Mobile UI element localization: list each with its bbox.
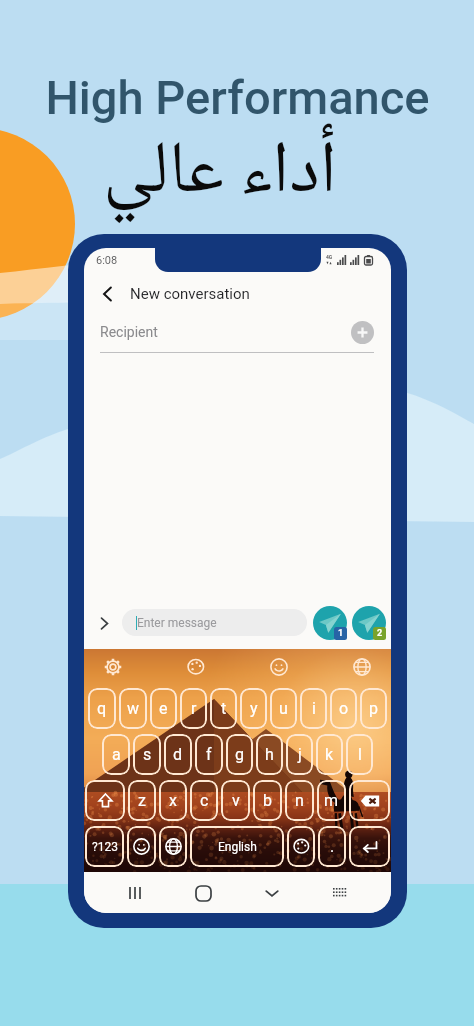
- staticText: 4G: [326, 254, 333, 260]
- staticText: أداء عالي: [103, 113, 337, 237]
- staticText: v: [232, 791, 240, 810]
- button[interactable]: Back: [92, 278, 124, 310]
- button[interactable]: j: [286, 734, 313, 775]
- button[interactable]: q: [88, 688, 116, 729]
- staticText: New conversation: [130, 285, 250, 303]
- button[interactable]: Recipient: [100, 316, 374, 348]
- button[interactable]: p: [360, 688, 387, 729]
- button[interactable]: i: [300, 688, 327, 729]
- staticText: High Performance: [45, 70, 430, 125]
- button[interactable]: Backspace: [349, 780, 390, 821]
- button[interactable]: d: [164, 734, 192, 775]
- staticText: q: [97, 699, 107, 718]
- staticText: k: [325, 745, 334, 764]
- button[interactable]: t: [210, 688, 237, 729]
- staticText: n: [295, 791, 304, 810]
- staticText: x: [169, 791, 177, 810]
- staticText: b: [263, 791, 272, 810]
- button[interactable]: o: [330, 688, 357, 729]
- staticText: Enter message: [137, 616, 217, 630]
- staticText: h: [265, 745, 274, 764]
- button[interactable]: y: [240, 688, 267, 729]
- staticText: p: [369, 699, 378, 718]
- button[interactable]: Add recipient: [351, 321, 374, 344]
- button[interactable]: Home: [186, 876, 220, 910]
- staticText: j: [298, 745, 302, 764]
- button[interactable]: s: [133, 734, 161, 775]
- button[interactable]: g: [226, 734, 253, 775]
- button[interactable]: u: [270, 688, 297, 729]
- button[interactable]: English: [190, 826, 284, 867]
- staticText: d: [173, 745, 183, 764]
- staticText: w: [127, 699, 140, 718]
- button[interactable]: Send 1: [313, 606, 347, 640]
- button[interactable]: c: [190, 780, 218, 821]
- button[interactable]: x: [159, 780, 187, 821]
- staticText: m: [324, 791, 339, 810]
- staticText: e: [159, 699, 168, 718]
- staticText: t: [221, 699, 227, 718]
- staticText: English: [218, 840, 257, 854]
- staticText: c: [200, 791, 209, 810]
- button[interactable]: n: [285, 780, 314, 821]
- staticText: a: [112, 745, 121, 764]
- staticText: g: [235, 745, 244, 764]
- button[interactable]: Shift: [85, 780, 125, 821]
- staticText: f: [206, 745, 212, 764]
- button[interactable]: Enter message: [122, 609, 307, 636]
- staticText: ?123: [92, 840, 118, 854]
- button[interactable]: Language: [159, 826, 187, 867]
- button[interactable]: Emoji: [127, 826, 156, 867]
- button[interactable]: Settings: [98, 652, 128, 682]
- staticText: Recipient: [100, 324, 158, 340]
- button[interactable]: z: [128, 780, 156, 821]
- button[interactable]: l: [346, 734, 373, 775]
- button[interactable]: Enter: [349, 826, 390, 867]
- button[interactable]: e: [150, 688, 177, 729]
- staticText: .: [330, 837, 335, 856]
- staticText: 1: [338, 628, 344, 639]
- button[interactable]: .: [318, 826, 346, 867]
- button[interactable]: a: [102, 734, 130, 775]
- button[interactable]: Language: [347, 652, 377, 682]
- button[interactable]: r: [180, 688, 207, 729]
- staticText: y: [250, 699, 258, 718]
- button[interactable]: b: [253, 780, 282, 821]
- staticText: z: [138, 791, 146, 810]
- staticText: u: [279, 699, 288, 718]
- staticText: 6:08: [96, 254, 118, 267]
- staticText: 2: [377, 628, 383, 639]
- button[interactable]: Send 2: [352, 606, 386, 640]
- button[interactable]: h: [256, 734, 283, 775]
- button[interactable]: Recents: [118, 876, 152, 910]
- button[interactable]: Hide keyboard: [255, 876, 289, 910]
- button[interactable]: Expand: [92, 611, 116, 635]
- button[interactable]: f: [195, 734, 223, 775]
- staticText: r: [191, 699, 197, 718]
- button[interactable]: k: [316, 734, 343, 775]
- staticText: o: [339, 699, 349, 718]
- button[interactable]: ?123: [85, 826, 124, 867]
- button[interactable]: Themes: [287, 826, 315, 867]
- staticText: l: [358, 745, 362, 764]
- button[interactable]: Switch keyboard: [323, 876, 357, 910]
- staticText: s: [143, 745, 152, 764]
- button[interactable]: m: [317, 780, 346, 821]
- button[interactable]: Back: [84, 272, 391, 316]
- staticText: i: [312, 699, 316, 718]
- button[interactable]: Themes: [181, 652, 211, 682]
- button[interactable]: w: [119, 688, 147, 729]
- button[interactable]: v: [221, 780, 250, 821]
- button[interactable]: Emoji: [264, 652, 294, 682]
